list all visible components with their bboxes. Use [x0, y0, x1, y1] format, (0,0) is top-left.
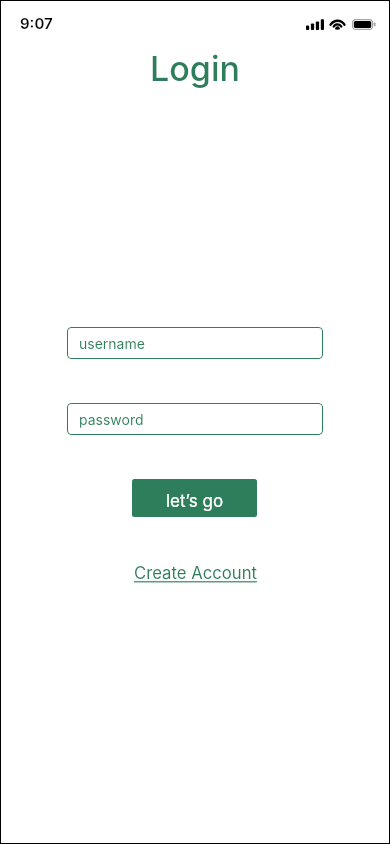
button[interactable]: let’s go	[132, 479, 257, 517]
button[interactable]: password	[67, 403, 323, 435]
staticText: let’s go	[166, 491, 224, 512]
staticText: Login	[0, 48, 390, 89]
other: Wi-Fi	[329, 19, 346, 31]
staticText: Create Account	[134, 563, 257, 583]
other: Cellular signal	[306, 19, 324, 30]
staticText: 9:07	[20, 14, 53, 32]
staticText: username	[79, 335, 145, 352]
other: Battery	[352, 19, 376, 30]
button[interactable]: username	[67, 327, 323, 359]
button[interactable]: Create Account	[0, 563, 390, 589]
staticText: password	[79, 411, 144, 428]
